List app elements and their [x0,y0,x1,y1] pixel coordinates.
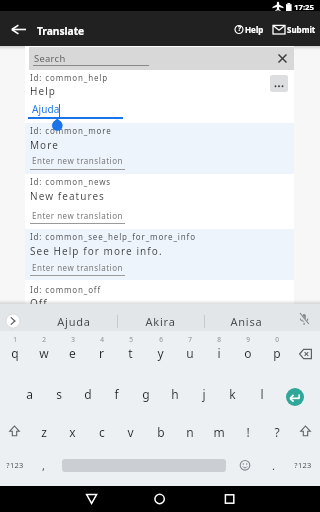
staticText: p [273,345,281,361]
button[interactable]: 4 [87,333,116,345]
button[interactable]: i [204,342,233,364]
staticText: n [186,424,194,440]
staticText: , [42,458,45,473]
button[interactable]: 9 [233,333,262,345]
button[interactable]: y [146,342,175,364]
button[interactable]: Id: common_see_help_for_more_info [25,229,294,281]
staticText: ? [274,424,280,440]
button[interactable] [6,16,31,41]
button[interactable]: u [175,342,204,364]
button[interactable]: Id: common_off [25,280,294,306]
button[interactable] [281,383,309,411]
staticText: y [157,345,164,361]
button[interactable]: 0 [262,333,291,345]
button[interactable] [235,455,255,475]
button[interactable]: m [204,421,233,443]
button[interactable] [274,47,294,70]
button[interactable]: f [102,383,131,405]
button[interactable]: r [87,342,116,364]
staticText: 5 [129,335,133,344]
button[interactable]: 8 [204,333,233,345]
button[interactable]: t [116,342,145,364]
button[interactable] [291,421,320,441]
button[interactable]: ! [233,421,262,443]
button[interactable]: Id: common_news [25,174,294,229]
button[interactable]: h [160,383,189,405]
button[interactable]: , [29,455,58,475]
staticText: Ajuda [32,102,60,116]
button[interactable] [291,344,320,364]
staticText: 9 [246,335,250,344]
staticText: Akira [145,314,176,329]
button[interactable]: p [262,342,291,364]
button[interactable]: Submit [270,17,318,40]
button[interactable]: ? [231,17,268,40]
button[interactable]: 2 [29,333,58,345]
button[interactable]: n [175,421,204,443]
staticText: b [157,424,165,440]
staticText: More [30,138,59,152]
button[interactable]: o [233,342,262,364]
button[interactable]: ? [262,421,291,443]
staticText: ?123 [294,460,312,470]
button[interactable]: z [29,421,58,443]
button[interactable] [219,488,240,509]
staticText: 2 [42,335,46,344]
button[interactable] [149,488,170,509]
staticText: Search [34,52,66,65]
staticText: s [56,386,62,402]
staticText: Id: common_news [30,176,111,187]
button[interactable]: Search [29,47,294,70]
button[interactable]: g [131,383,160,405]
button[interactable] [294,310,314,330]
button[interactable]: Id: common_more [25,123,294,174]
staticText: Submit [287,24,316,35]
button[interactable]: Id: common_help [25,70,294,123]
button[interactable]: l [247,383,276,405]
staticText: j [202,386,206,402]
staticText: 4 [100,335,104,344]
button[interactable]: Anisa [216,310,276,332]
button[interactable] [3,311,23,331]
button[interactable]: x [58,421,87,443]
button[interactable]: s [44,383,73,405]
button[interactable] [270,75,288,92]
button[interactable]: w [29,342,58,364]
staticText: Enter new translation [32,210,123,221]
button[interactable] [81,488,102,509]
button[interactable]: b [146,421,175,443]
button[interactable]: 3 [58,333,87,345]
button[interactable]: c [87,421,116,443]
button[interactable]: e [58,342,87,364]
button[interactable]: q [0,342,29,364]
button[interactable]: 7 [175,333,204,345]
staticText: m [213,424,225,440]
staticText: v [127,424,134,440]
staticText: . [272,458,275,473]
button[interactable]: v [116,421,145,443]
button[interactable]: d [73,383,102,405]
staticText: k [229,386,236,402]
button[interactable]: 6 [146,333,175,345]
button[interactable]: ?123 [0,455,29,475]
button[interactable]: ?123 [286,455,319,475]
button[interactable]: j [189,383,218,405]
staticText: Id: common_more [30,125,112,136]
staticText: o [244,345,252,361]
button[interactable]: 5 [116,333,145,345]
staticText: New features [30,189,105,203]
staticText: Off [30,296,48,310]
button[interactable]: a [15,383,44,405]
button[interactable]: 1 [0,333,29,345]
staticText: z [41,424,47,440]
staticText: g [142,386,150,402]
button[interactable]: Ajuda [44,310,104,332]
button[interactable]: k [218,383,247,405]
button[interactable] [0,421,29,441]
button[interactable]: . [263,455,283,475]
staticText: Enter new translation [32,155,123,166]
staticText: a [26,386,33,402]
staticText: t [128,345,133,361]
button[interactable]: Akira [130,310,190,332]
